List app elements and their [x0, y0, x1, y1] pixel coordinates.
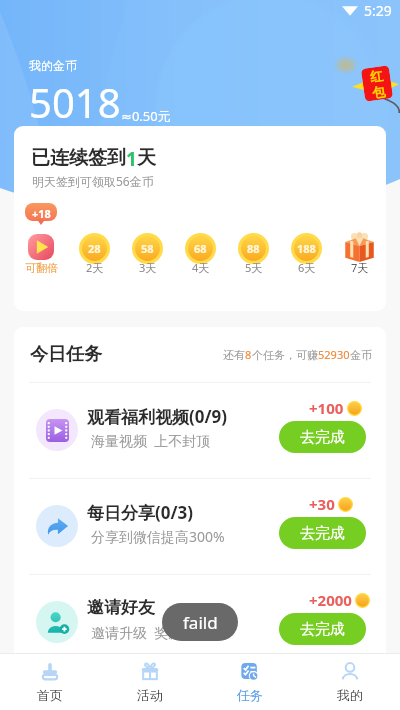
staticText: 每日分享(0/3): [87, 501, 194, 524]
staticText: 去完成: [300, 428, 345, 447]
staticText: 7天: [351, 260, 369, 275]
staticText: 我的: [337, 687, 363, 703]
staticText: 58: [141, 241, 154, 256]
button[interactable]: 首页: [0, 654, 100, 710]
staticText: 邀请升级 奖励无上限: [91, 623, 225, 642]
staticText: 2天: [86, 260, 104, 275]
button[interactable]: 28: [68, 203, 121, 275]
staticText: 88: [247, 241, 260, 256]
staticText: 1: [126, 146, 137, 172]
staticText: 天: [137, 146, 156, 170]
staticText: 6天: [298, 260, 316, 275]
staticText: 4天: [192, 260, 210, 275]
button[interactable]: 188: [280, 203, 333, 275]
staticText: 去完成: [300, 524, 345, 543]
staticText: faild: [183, 611, 218, 634]
staticText: 金币: [350, 348, 372, 362]
button[interactable]: 58: [121, 203, 174, 275]
button[interactable]: 任务: [200, 654, 300, 710]
button[interactable]: 88: [227, 203, 280, 275]
staticText: 已连续签到: [31, 146, 126, 170]
staticText: 5:29: [364, 1, 392, 20]
staticText: 去完成: [300, 620, 345, 639]
staticText: 活动: [137, 687, 163, 703]
staticText: 包: [371, 83, 386, 101]
staticText: 明天签到可领取56金币: [32, 173, 154, 189]
staticText: +30: [309, 494, 335, 514]
button[interactable]: 活动: [100, 654, 200, 710]
staticText: 今日任务: [30, 343, 102, 366]
staticText: +2000: [309, 590, 352, 610]
staticText: 任务: [237, 687, 263, 703]
button[interactable]: Share: [14, 478, 386, 574]
staticText: 28: [88, 241, 101, 256]
staticText: 红: [369, 67, 384, 85]
staticText: 观看福利视频(0/9): [87, 405, 228, 428]
other: Watch video: [46, 419, 69, 442]
staticText: +100: [309, 398, 344, 418]
staticText: 邀请好友: [87, 597, 155, 618]
staticText: 我的金币: [29, 58, 77, 73]
other: Share: [45, 514, 69, 538]
staticText: 3天: [139, 260, 157, 275]
staticText: 5天: [245, 260, 263, 275]
button[interactable]: 去完成: [279, 613, 366, 645]
button[interactable]: 68: [174, 203, 227, 275]
button[interactable]: 7天: [333, 203, 386, 275]
staticText: 8: [245, 347, 252, 362]
staticText: 个任务，可赚: [252, 348, 318, 362]
staticText: ≈0.50元: [121, 107, 171, 125]
button[interactable]: Invite friends: [14, 574, 386, 670]
staticText: 52930: [318, 347, 350, 362]
staticText: +18: [32, 206, 51, 221]
staticText: 分享到微信提高300%: [91, 527, 225, 546]
button[interactable]: 我的: [300, 654, 400, 710]
staticText: 68: [194, 241, 207, 256]
staticText: 5018: [29, 75, 121, 129]
staticText: 可翻倍: [25, 261, 58, 275]
button[interactable]: Watch video: [14, 382, 386, 478]
button[interactable]: 去完成: [279, 517, 366, 549]
button[interactable]: +18: [14, 203, 68, 275]
staticText: 188: [297, 241, 316, 256]
staticText: 还有: [223, 348, 245, 362]
button[interactable]: 去完成: [279, 421, 366, 453]
staticText: 海量视频 上不封顶: [91, 431, 211, 450]
staticText: 首页: [37, 687, 63, 703]
other: Invite friends: [46, 611, 69, 634]
